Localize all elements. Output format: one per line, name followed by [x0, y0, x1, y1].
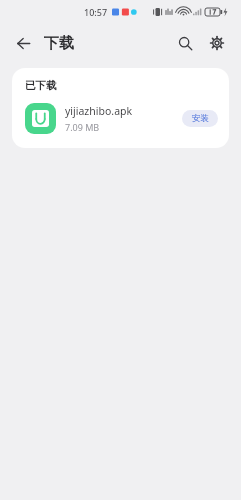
staticText: 下载: [44, 34, 74, 53]
button[interactable]: Back: [8, 28, 38, 58]
button[interactable]: yijiazhibo.apk: [12, 101, 229, 136]
staticText: 已下载: [25, 79, 57, 92]
button[interactable]: Search: [169, 27, 201, 59]
staticText: 10:57: [84, 6, 108, 18]
staticText: yijiazhibo.apk: [65, 104, 133, 118]
button[interactable]: 安装: [182, 110, 218, 127]
staticText: 7.09 MB: [65, 121, 100, 133]
staticText: 安装: [192, 113, 209, 124]
button[interactable]: Settings: [201, 27, 233, 59]
